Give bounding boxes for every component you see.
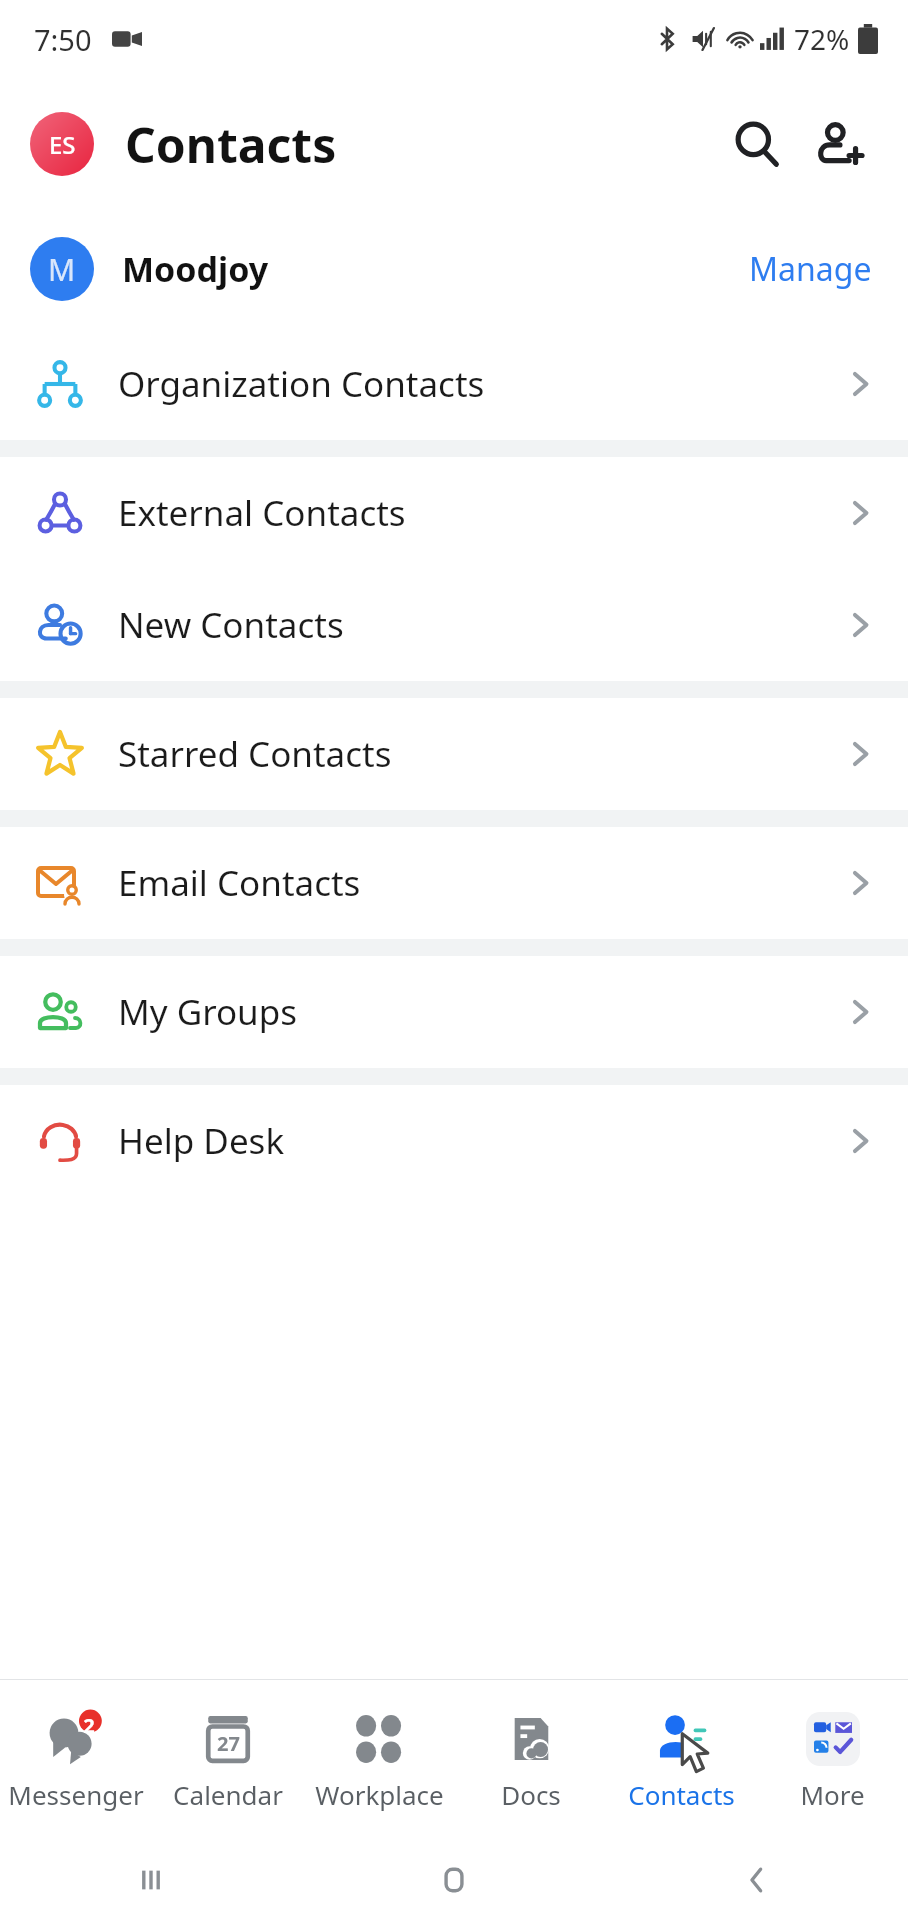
button[interactable]: M [0, 210, 908, 328]
button[interactable]: Contacts [606, 1680, 757, 1840]
button[interactable]: Account [30, 112, 94, 176]
staticText: My Groups [118, 988, 298, 1036]
staticText: Help Desk [118, 1117, 285, 1165]
button[interactable]: Starred Contacts [0, 698, 908, 810]
staticText: Docs [501, 1777, 561, 1812]
button[interactable]: Email Contacts [0, 827, 908, 939]
button[interactable]: New Contacts [0, 569, 908, 681]
staticText: Messenger [8, 1777, 144, 1812]
button[interactable]: 27 [152, 1680, 304, 1840]
button[interactable]: Add contact [800, 105, 878, 183]
button[interactable]: My Groups [0, 956, 908, 1068]
button[interactable]: Docs [455, 1680, 606, 1840]
staticText: Moodjoy [122, 246, 269, 292]
staticText: M [48, 249, 76, 290]
staticText: 72% [794, 20, 850, 58]
button[interactable]: Search [718, 105, 796, 183]
staticText: Organization Contacts [118, 360, 485, 408]
staticText: 27 [217, 1730, 240, 1757]
staticText: Contacts [628, 1777, 735, 1812]
staticText: New Contacts [118, 601, 344, 649]
button[interactable]: 2 [0, 1680, 152, 1840]
button[interactable]: External Contacts [0, 457, 908, 569]
button[interactable]: Recent apps [0, 1840, 302, 1920]
staticText: Starred Contacts [118, 730, 392, 778]
staticText: 2 [82, 1712, 96, 1739]
staticText: Manage [749, 247, 872, 291]
staticText: Email Contacts [118, 859, 361, 907]
button[interactable]: Home [302, 1840, 605, 1920]
staticText: Workplace [315, 1777, 444, 1812]
staticText: ES [49, 128, 76, 161]
staticText: More [800, 1777, 865, 1812]
button[interactable]: Back [605, 1840, 908, 1920]
button[interactable]: Workplace [304, 1680, 455, 1840]
button[interactable]: Manage [743, 239, 878, 299]
staticText: External Contacts [118, 489, 406, 537]
button[interactable]: Help Desk [0, 1085, 908, 1197]
button[interactable]: Organization Contacts [0, 328, 908, 440]
staticText: Contacts [125, 112, 337, 177]
staticText: 7:50 [34, 20, 92, 59]
staticText: Calendar [173, 1777, 283, 1812]
button[interactable]: More [757, 1680, 908, 1840]
